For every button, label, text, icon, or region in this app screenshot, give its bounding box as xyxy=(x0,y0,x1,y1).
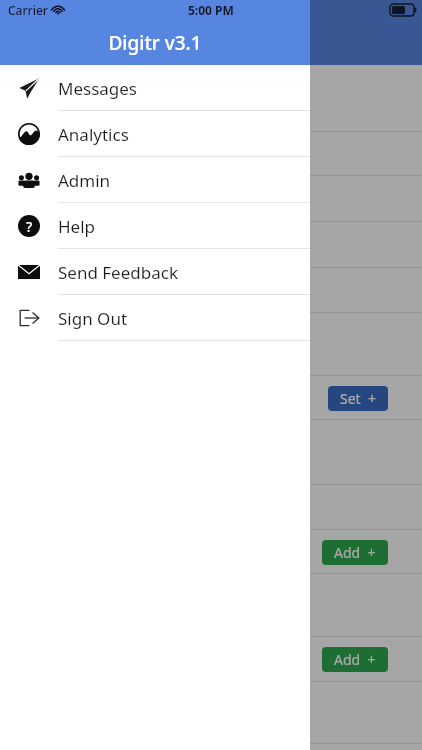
staticText: Messages xyxy=(58,77,138,100)
staticText: Add + xyxy=(334,543,376,562)
staticText: Carrier xyxy=(8,2,48,18)
staticText: Digitr v3.1 xyxy=(0,30,310,56)
staticText: Admin xyxy=(58,169,111,192)
staticText: Send Feedback xyxy=(58,261,178,284)
button[interactable]: Add + xyxy=(322,540,388,565)
staticText: STUDENT xyxy=(16,333,92,356)
staticText: Add + xyxy=(334,650,376,669)
button[interactable]: ? xyxy=(0,203,310,249)
button[interactable]: Analytics xyxy=(0,111,310,157)
button[interactable]: Sign Out xyxy=(0,295,310,341)
staticText: ? xyxy=(26,217,33,236)
button[interactable]: Admin xyxy=(0,157,310,203)
button[interactable]: Messages xyxy=(0,65,310,111)
staticText: Help xyxy=(58,215,96,238)
staticText: Set + xyxy=(340,389,376,408)
staticText: …lots of text about the district. xyxy=(16,143,260,166)
staticText: Sign Out xyxy=(58,307,128,330)
button[interactable]: Add + xyxy=(322,647,388,672)
staticText: 5:00 PM xyxy=(188,2,234,18)
button[interactable]: Send Feedback xyxy=(0,249,310,295)
button[interactable]: Set + xyxy=(328,386,388,411)
staticText: Analytics xyxy=(58,123,129,146)
staticText: …0.5 / yea… xyxy=(16,234,110,257)
